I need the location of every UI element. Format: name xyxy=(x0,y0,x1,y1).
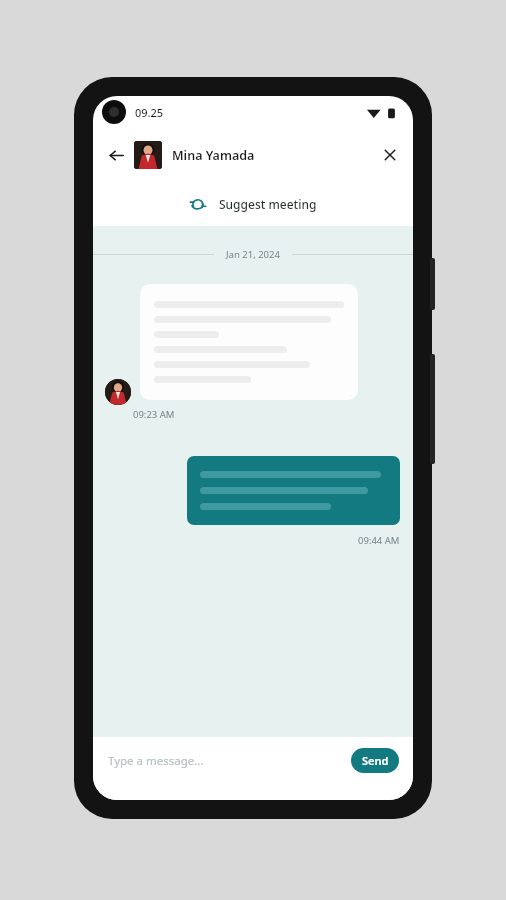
staticText: 09:44 AM xyxy=(358,534,400,547)
staticText: Jan 21, 2024 xyxy=(226,248,280,261)
staticText: Mina Yamada xyxy=(172,147,255,164)
staticText: 09.25 xyxy=(135,105,164,120)
staticText: Suggest meeting xyxy=(219,196,317,212)
button[interactable] xyxy=(187,456,400,525)
button[interactable]: Back xyxy=(99,138,133,172)
button[interactable] xyxy=(140,284,358,400)
staticText: Send xyxy=(362,753,389,768)
button[interactable]: Type a message... xyxy=(108,753,204,769)
button[interactable]: Close xyxy=(373,138,407,172)
staticText: 09:23 AM xyxy=(133,408,175,421)
button[interactable]: Send xyxy=(351,748,399,773)
button[interactable]: Suggest meeting xyxy=(93,181,413,226)
